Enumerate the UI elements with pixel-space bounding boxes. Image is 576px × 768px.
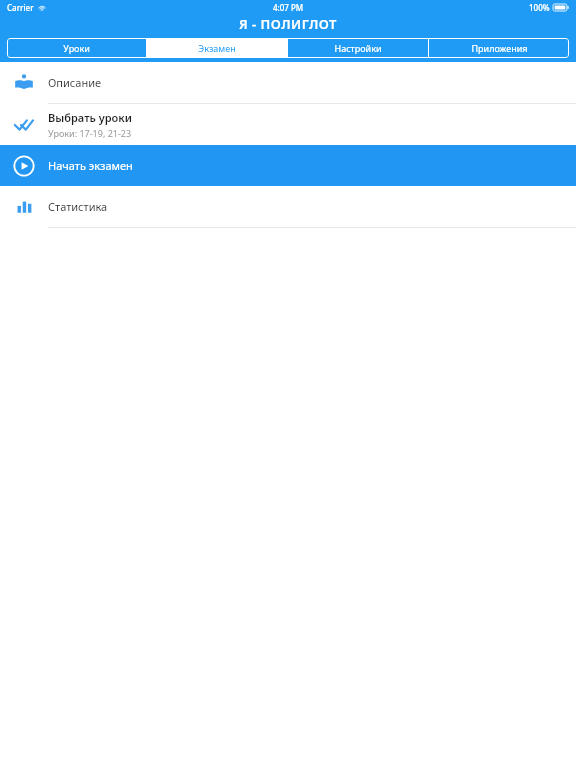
staticText: Экзамен xyxy=(198,42,236,54)
staticText: Carrier xyxy=(7,2,34,13)
button[interactable]: Экзамен xyxy=(147,38,287,58)
staticText: Статистика xyxy=(48,199,108,214)
button[interactable]: Выбрать уроки xyxy=(0,104,576,145)
button[interactable]: Описание xyxy=(0,62,576,103)
button[interactable]: Приложения xyxy=(429,38,569,58)
other: Статистика xyxy=(15,198,33,216)
staticText: Описание xyxy=(48,75,102,90)
button[interactable]: Уроки xyxy=(7,38,146,58)
staticText: Уроки: 17-19, 21-23 xyxy=(48,127,132,139)
staticText: 4:07 PM xyxy=(273,2,304,13)
staticText: Настройки xyxy=(334,42,382,54)
staticText: Я - ПОЛИГЛОТ xyxy=(0,15,576,33)
button[interactable]: Начать экзамен xyxy=(0,145,576,186)
other: Выбрать уроки xyxy=(14,115,34,135)
staticText: Начать экзамен xyxy=(48,158,133,173)
staticText: Уроки xyxy=(63,42,90,54)
other: Начать экзамен xyxy=(13,155,35,177)
staticText: Выбрать уроки xyxy=(48,110,132,125)
other: Описание xyxy=(14,73,34,93)
button[interactable]: Настройки xyxy=(288,38,428,58)
staticText: 100% xyxy=(529,2,550,13)
button[interactable]: Статистика xyxy=(0,186,576,227)
staticText: Приложения xyxy=(471,42,528,54)
